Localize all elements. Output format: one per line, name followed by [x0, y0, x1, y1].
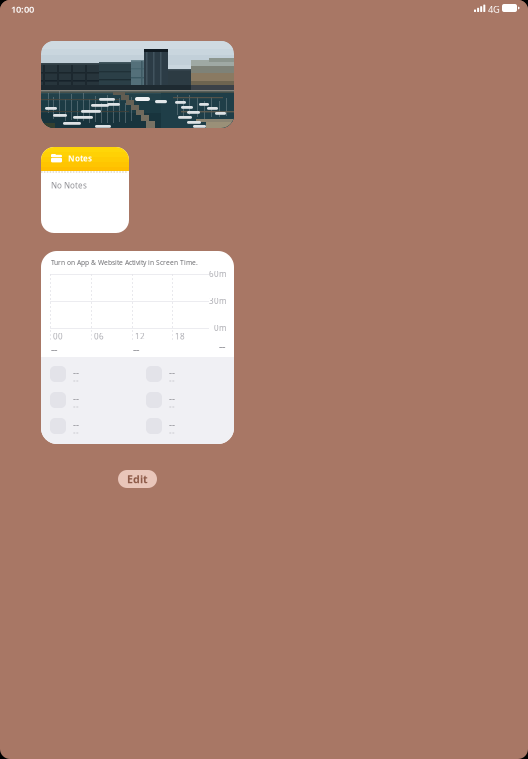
staticText: 60m — [209, 269, 226, 279]
staticText: -- — [169, 401, 175, 412]
staticText: -- — [169, 427, 175, 438]
staticText: 10:00 — [11, 3, 34, 15]
button[interactable]: Notes widget — [41, 147, 129, 233]
staticText: -- — [73, 375, 79, 386]
button[interactable]: Edit — [118, 470, 157, 488]
staticText: 0m — [214, 323, 226, 333]
staticText: 06 — [94, 331, 104, 342]
staticText: Turn on App & Website Activity in Screen… — [51, 258, 198, 267]
staticText: -- — [219, 339, 225, 353]
staticText: -- — [133, 342, 139, 356]
staticText: 30m — [209, 296, 226, 306]
staticText: -- — [73, 418, 79, 431]
staticText: 18 — [175, 331, 185, 342]
staticText: Edit — [127, 472, 148, 486]
staticText: -- — [51, 342, 57, 356]
staticText: -- — [169, 418, 175, 431]
staticText: No Notes — [51, 180, 87, 191]
staticText: Notes — [68, 153, 92, 164]
button[interactable]: Photos widget — [41, 41, 234, 128]
staticText: -- — [73, 366, 79, 379]
staticText: -- — [169, 366, 175, 379]
staticText: -- — [169, 392, 175, 405]
staticText: -- — [73, 427, 79, 438]
staticText: 4G — [488, 3, 500, 15]
staticText: -- — [73, 401, 79, 412]
staticText: -- — [73, 392, 79, 405]
button[interactable]: Screen Time widget — [41, 251, 234, 444]
staticText: 12 — [135, 331, 145, 342]
staticText: -- — [169, 375, 175, 386]
staticText: 00 — [53, 331, 63, 342]
